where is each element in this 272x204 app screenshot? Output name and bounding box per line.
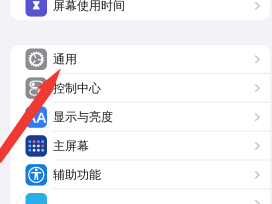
button[interactable]: 通用 (10, 45, 270, 74)
button[interactable]: 辅助功能 (10, 160, 270, 189)
button[interactable]: 控制中心 (10, 74, 270, 103)
staticText: 屏幕使用时间 (53, 0, 125, 13)
button[interactable]: AA (10, 103, 270, 131)
button[interactable]: 屏幕使用时间 (10, 0, 270, 20)
staticText: AA (26, 107, 46, 127)
staticText: 通用 (53, 52, 77, 67)
staticText: 显示与亮度 (53, 109, 113, 125)
staticText: 辅助功能 (53, 167, 101, 182)
button[interactable]: 主屏幕 (10, 131, 270, 160)
staticText: 主屏幕 (53, 138, 89, 153)
staticText: 控制中心 (53, 81, 101, 96)
button[interactable] (10, 189, 270, 204)
